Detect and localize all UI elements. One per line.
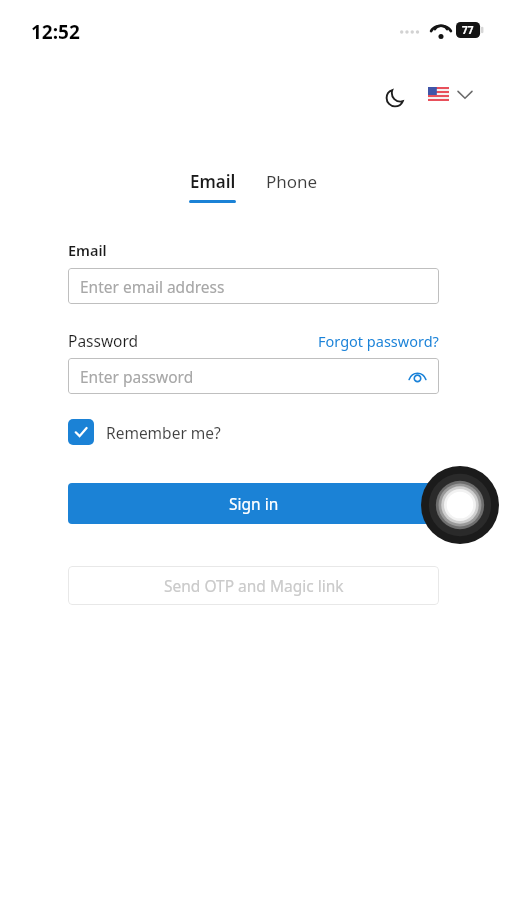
button[interactable]: Phone [266, 170, 318, 193]
button[interactable]: Enter email address [68, 268, 439, 304]
staticText: Phone [266, 170, 318, 193]
staticText: Password [68, 330, 139, 351]
button[interactable]: Show password [407, 366, 427, 386]
staticText: Email [68, 240, 107, 260]
button[interactable]: Select language [428, 87, 472, 101]
staticText: Enter password [80, 366, 194, 387]
button[interactable]: Email [189, 170, 236, 203]
staticText: Forgot password? [318, 331, 439, 351]
button[interactable]: Dark mode [384, 87, 406, 109]
staticText: Email [190, 170, 236, 193]
staticText: 12:52 [31, 19, 80, 45]
button[interactable]: Send OTP and Magic link [68, 566, 439, 605]
staticText: Enter email address [80, 276, 225, 297]
staticText: Send OTP and Magic link [164, 575, 344, 596]
staticText: Sign in [229, 493, 279, 514]
staticText: Remember me? [106, 422, 221, 443]
button[interactable]: Sign in [68, 483, 439, 524]
button[interactable]: Enter password [68, 358, 439, 394]
button[interactable]: Forgot password? [318, 331, 439, 351]
button[interactable]: Remember me? [68, 419, 221, 445]
staticText: 77 [462, 23, 474, 37]
